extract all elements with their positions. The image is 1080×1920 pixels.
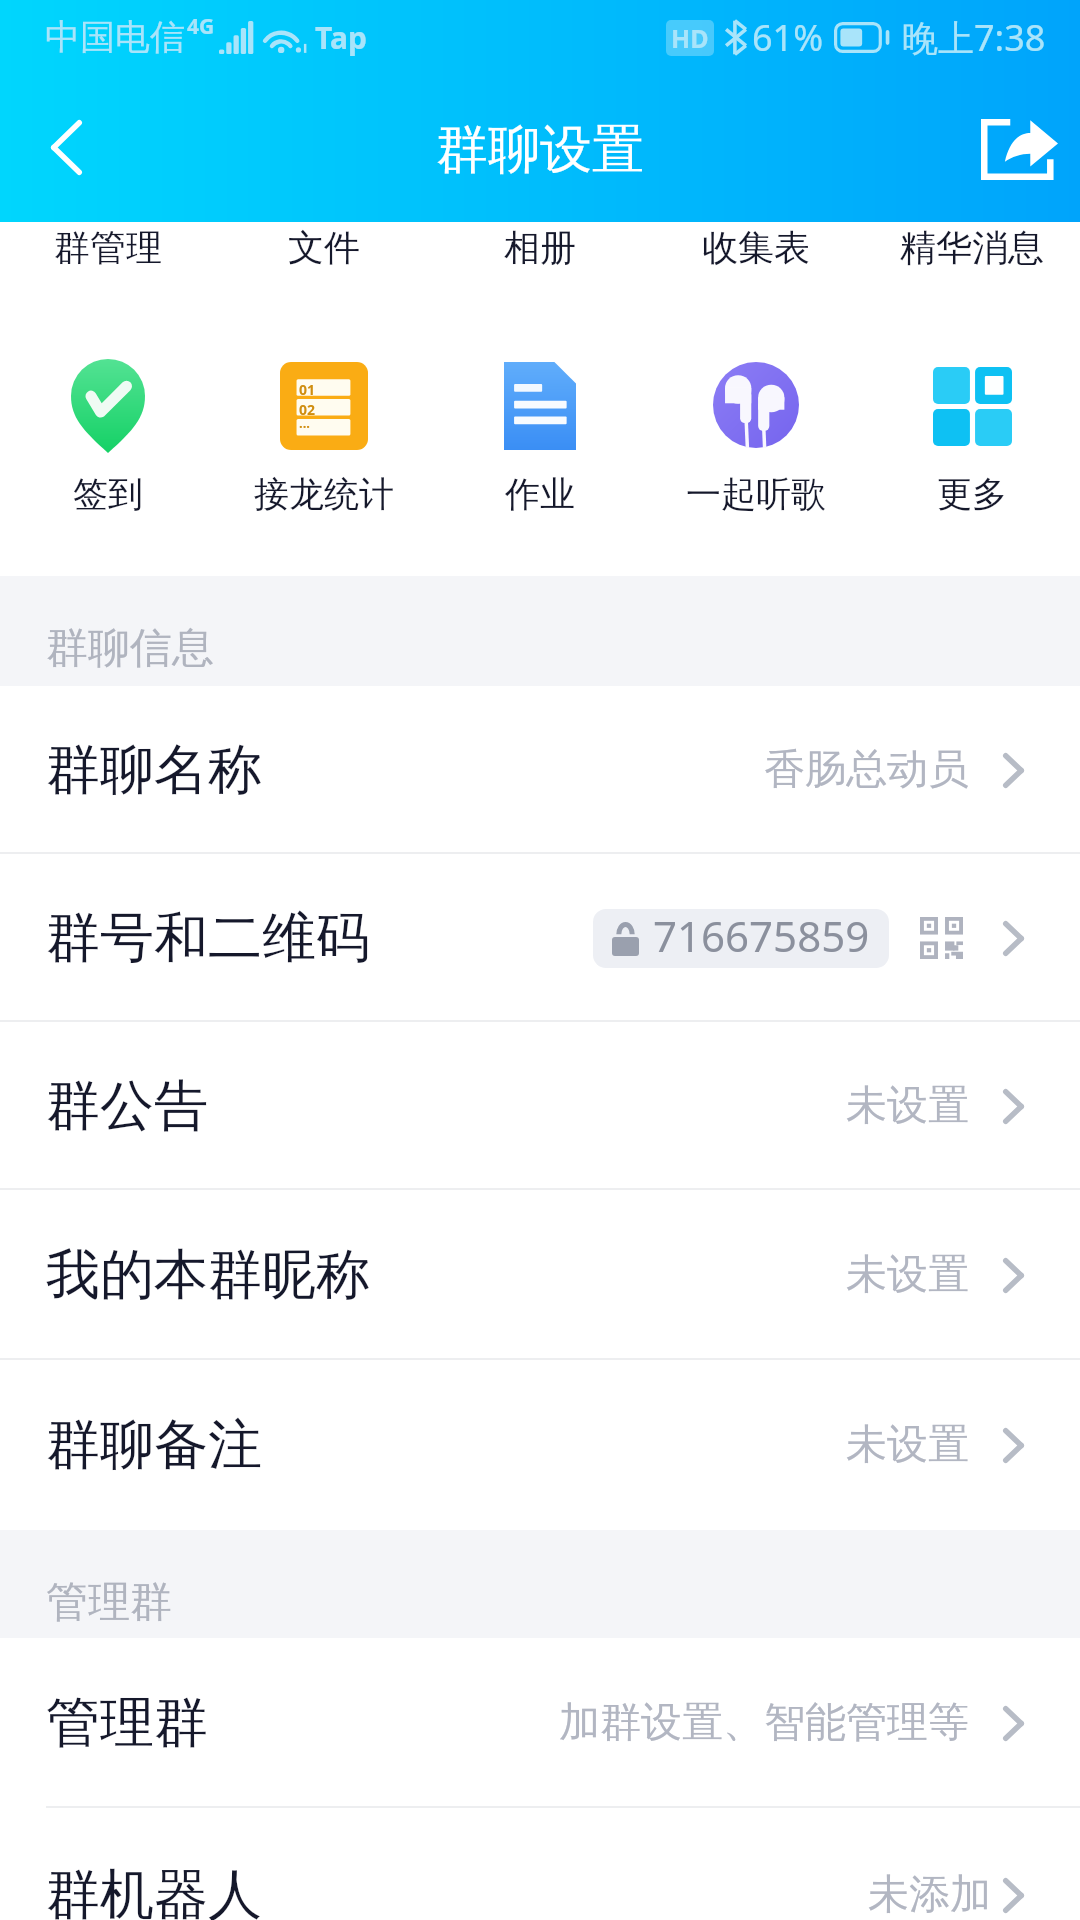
button[interactable]: 群公告 [0, 1022, 1080, 1190]
button[interactable]: 群聊备注 [0, 1360, 1080, 1530]
button[interactable]: 群号和二维码 [0, 854, 1080, 1022]
staticText: HD [671, 21, 709, 55]
staticText: 未设置 [846, 1419, 969, 1471]
staticText: 群聊设置 [436, 117, 644, 183]
button[interactable]: 群聊名称 [0, 686, 1080, 854]
staticText: 更多 [937, 472, 1007, 516]
staticText: 管理群 [46, 1689, 208, 1757]
button[interactable]: 01 [216, 322, 432, 576]
button[interactable]: Back [6, 92, 126, 202]
staticText: 716675859 [653, 909, 870, 964]
button[interactable]: 签到 [0, 322, 216, 576]
button[interactable]: 群管理 [0, 222, 216, 322]
staticText: 群聊名称 [46, 736, 262, 804]
button[interactable]: 相册 [432, 222, 648, 322]
button[interactable]: 群机器人 [0, 1808, 1080, 1920]
staticText: 未设置 [846, 1249, 969, 1301]
staticText: 61% [752, 13, 824, 62]
staticText: Tap [315, 17, 367, 58]
button[interactable]: 更多 [864, 322, 1080, 576]
staticText: ··· [299, 417, 310, 435]
staticText: 相册 [504, 225, 576, 270]
button[interactable]: 管理群 [0, 1638, 1080, 1808]
staticText: 群聊信息 [46, 622, 214, 675]
staticText: 未设置 [846, 1080, 969, 1132]
staticText: 我的本群昵称 [46, 1241, 370, 1309]
staticText: 文件 [288, 225, 360, 270]
staticText: 01 [299, 380, 316, 399]
staticText: 02 [299, 400, 316, 419]
staticText: 精华消息 [900, 225, 1044, 270]
staticText: 收集表 [702, 225, 810, 270]
button[interactable]: 一起听歌 [648, 322, 864, 576]
staticText: 接龙统计 [254, 472, 394, 516]
staticText: 作业 [505, 472, 575, 516]
staticText: 群管理 [54, 225, 162, 270]
button[interactable]: 收集表 [648, 222, 864, 322]
button[interactable]: 文件 [216, 222, 432, 322]
staticText: 香肠总动员 [764, 744, 969, 796]
staticText: 群机器人 [46, 1861, 262, 1920]
staticText: 中国电信 [45, 15, 185, 59]
button[interactable]: 精华消息 [864, 222, 1080, 322]
staticText: 一起听歌 [686, 472, 826, 516]
staticText: 晚上7:38 [902, 13, 1046, 62]
staticText: 管理群 [46, 1576, 172, 1629]
staticText: 群号和二维码 [46, 904, 370, 972]
staticText: 群聊备注 [46, 1411, 262, 1479]
staticText: 未添加 [868, 1869, 991, 1920]
staticText: 加群设置、智能管理等 [559, 1697, 969, 1749]
staticText: 群公告 [46, 1072, 208, 1140]
staticText: 4G [187, 12, 215, 41]
button[interactable]: 作业 [432, 322, 648, 576]
staticText: 签到 [73, 472, 143, 516]
button[interactable]: Share [964, 94, 1074, 204]
button[interactable]: 我的本群昵称 [0, 1190, 1080, 1360]
